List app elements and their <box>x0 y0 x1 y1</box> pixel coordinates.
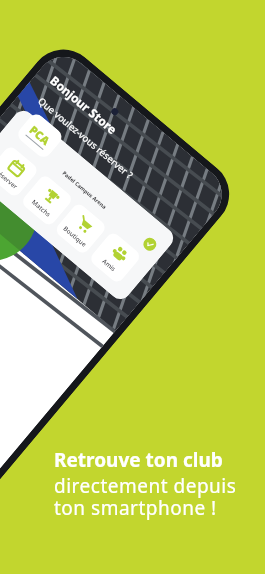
staticText: Amis <box>100 257 118 273</box>
staticText: PCA <box>27 122 54 148</box>
staticText: Padel Campus Arena <box>5 122 165 257</box>
button[interactable]: Valider <box>141 235 159 253</box>
staticText: Réserver <box>0 167 20 191</box>
staticText: Boutique <box>61 224 89 249</box>
button[interactable]: Amis <box>88 230 142 285</box>
staticText: Que voulez-vous réserver ? <box>35 94 136 182</box>
staticText: Retrouve ton club <box>54 447 223 473</box>
button[interactable]: Padel Campus Arena <box>0 106 178 303</box>
button[interactable]: Réserver <box>0 144 40 199</box>
staticText: Matchs <box>30 197 52 218</box>
button[interactable]: Boutique <box>53 202 108 256</box>
staticText: directement depuis ton smartphone ! <box>54 473 237 521</box>
button[interactable]: Matchs <box>20 173 74 227</box>
staticText: Bonjour Store <box>47 72 121 138</box>
button[interactable]: PCA <box>15 111 65 160</box>
